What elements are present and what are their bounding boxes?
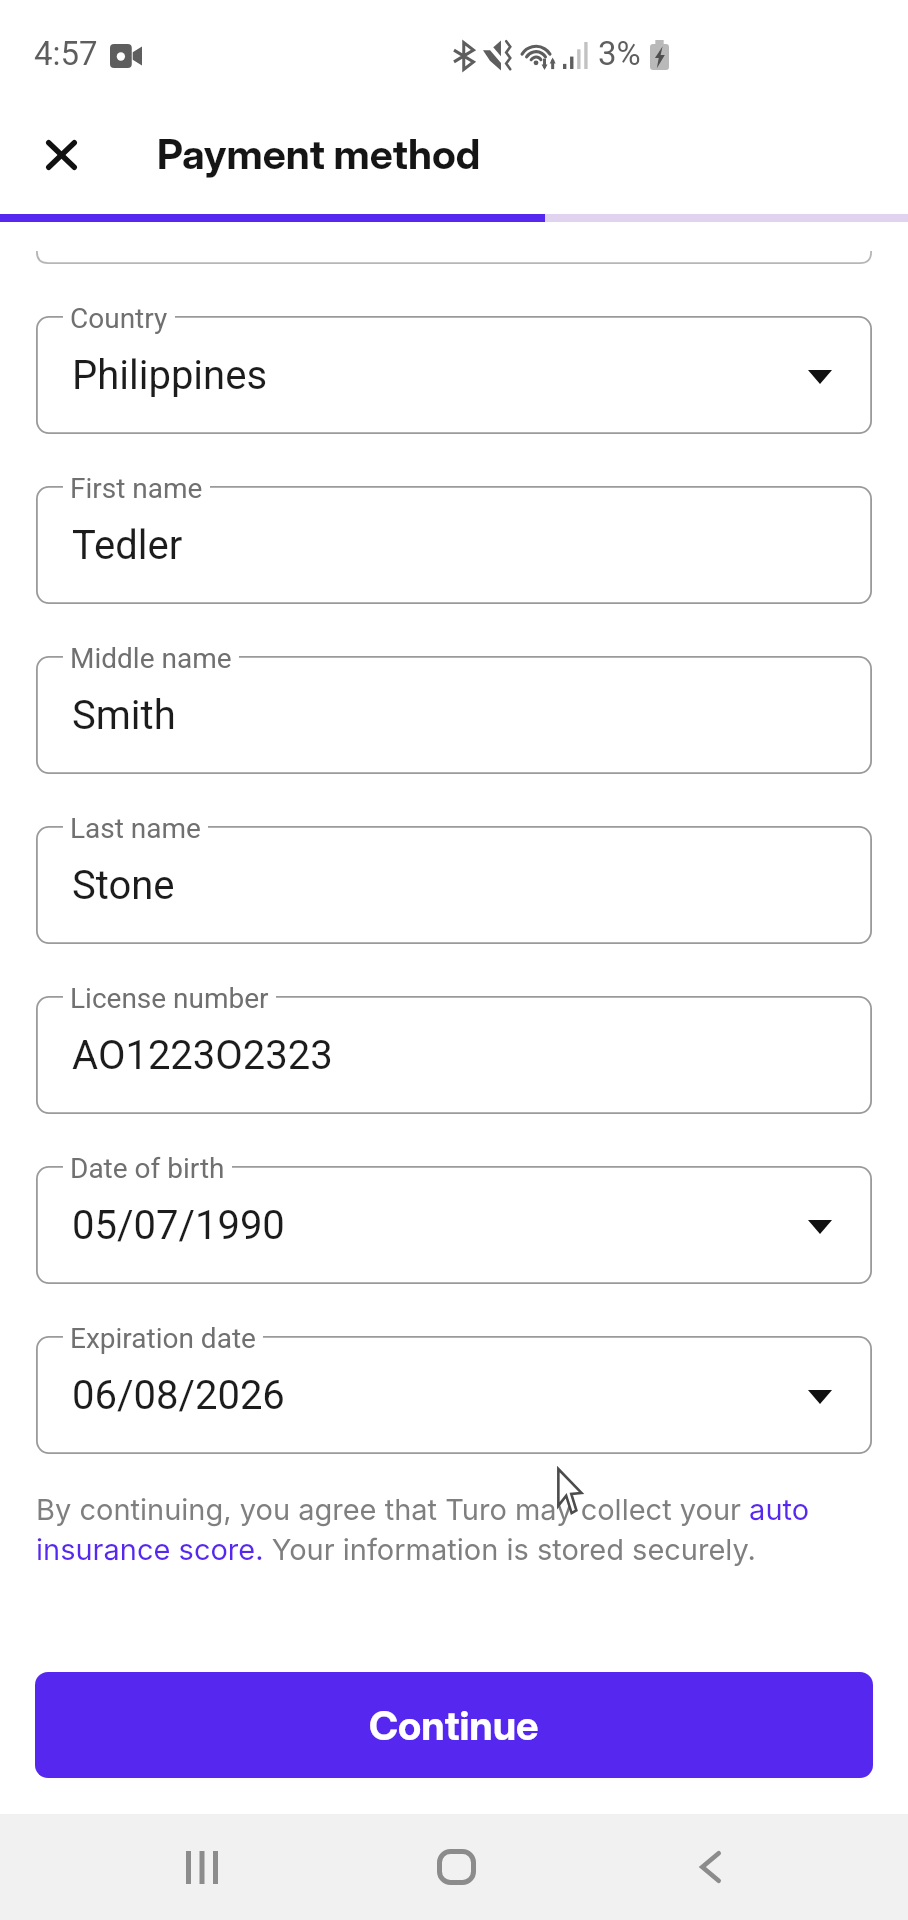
staticText: By continuing, you agree that Turo may c… xyxy=(36,1492,872,1567)
button[interactable]: Country xyxy=(36,316,872,434)
staticText: License number xyxy=(70,982,269,1015)
staticText: 06/08/2026 xyxy=(72,1372,285,1419)
staticText: 4:57 xyxy=(34,34,98,73)
staticText: Expiration date xyxy=(70,1322,256,1355)
staticText: Smith xyxy=(72,692,176,739)
staticText: Tedler xyxy=(72,522,183,569)
staticText: AO1223O2323 xyxy=(72,1032,333,1079)
button[interactable]: Recent apps xyxy=(141,1814,263,1920)
button[interactable]: Close xyxy=(13,110,109,206)
button[interactable]: Expiration date xyxy=(36,1336,872,1454)
staticText: Philippines xyxy=(72,352,268,399)
staticText: 05/07/1990 xyxy=(72,1202,285,1249)
button[interactable]: Back xyxy=(648,1814,770,1920)
staticText: First name xyxy=(70,472,203,505)
button[interactable]: Middle name xyxy=(36,656,872,774)
button[interactable]: First name xyxy=(36,486,872,604)
staticText: 3% xyxy=(598,34,641,73)
button[interactable]: Continue xyxy=(35,1672,873,1778)
staticText: Continue xyxy=(369,1701,539,1749)
button[interactable]: Date of birth xyxy=(36,1166,872,1284)
staticText: Stone xyxy=(72,862,175,909)
button[interactable] xyxy=(36,251,872,264)
staticText: Last name xyxy=(70,812,201,845)
staticText: Middle name xyxy=(70,642,232,675)
button[interactable]: Last name xyxy=(36,826,872,944)
button[interactable]: License number xyxy=(36,996,872,1114)
button[interactable]: Home xyxy=(395,1814,517,1920)
staticText: Date of birth xyxy=(70,1152,225,1185)
staticText: Country xyxy=(70,302,168,335)
staticText: Payment method xyxy=(157,129,481,179)
